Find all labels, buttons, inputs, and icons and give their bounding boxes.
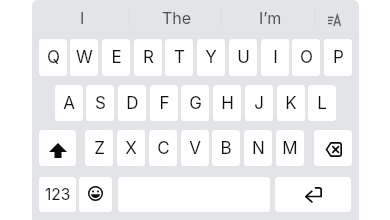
staticText: A [63, 93, 75, 114]
button[interactable]: Text formatting options [315, 0, 359, 32]
button[interactable]: L [308, 85, 336, 121]
button[interactable]: J [245, 85, 273, 121]
staticText: K [285, 93, 297, 114]
button[interactable]: A [55, 85, 83, 121]
button[interactable]: I’m [221, 0, 315, 32]
button[interactable]: N [244, 130, 272, 166]
staticText: W [76, 47, 93, 68]
button[interactable]: R [134, 39, 162, 76]
staticText: Q [47, 47, 60, 68]
staticText: P [333, 47, 344, 68]
staticText: J [254, 93, 264, 114]
staticText: N [252, 138, 265, 159]
staticText: Z [94, 138, 105, 159]
staticText: R [143, 47, 154, 68]
button[interactable]: Emoji keyboard [79, 177, 112, 212]
button[interactable]: P [324, 39, 352, 76]
staticText: U [237, 47, 250, 68]
button[interactable]: Q [39, 39, 67, 76]
button[interactable]: O [292, 39, 320, 76]
button[interactable]: Shift [39, 130, 76, 166]
staticText: V [189, 138, 201, 159]
button[interactable]: I [261, 39, 289, 76]
staticText: I’m [259, 8, 282, 27]
button[interactable]: Z [85, 130, 113, 166]
staticText: D [126, 93, 139, 114]
staticText: H [221, 93, 234, 114]
button[interactable]: 123 [39, 177, 76, 212]
button[interactable]: M [276, 130, 304, 166]
staticText: E [111, 47, 122, 68]
staticText: G [189, 93, 202, 114]
staticText: I [273, 47, 278, 68]
button[interactable]: U [229, 39, 257, 76]
button[interactable]: V [181, 130, 209, 166]
button[interactable]: X [117, 130, 145, 166]
button[interactable]: G [181, 85, 209, 121]
staticText: 123 [45, 185, 71, 204]
button[interactable]: B [212, 130, 240, 166]
staticText: B [220, 138, 232, 159]
staticText: X [125, 138, 137, 159]
staticText: S [95, 93, 106, 114]
button[interactable]: F [150, 85, 178, 121]
button[interactable]: Backspace [314, 130, 352, 166]
staticText: C [157, 138, 170, 159]
button[interactable]: The [129, 0, 221, 32]
button[interactable]: E [102, 39, 130, 76]
staticText: F [159, 93, 170, 114]
staticText: I [80, 8, 85, 27]
staticText: The [162, 8, 192, 27]
button[interactable]: T [165, 39, 193, 76]
staticText: M [282, 138, 298, 159]
button[interactable]: C [149, 130, 177, 166]
staticText: Y [205, 47, 217, 68]
staticText: O [300, 47, 313, 68]
button[interactable]: K [277, 85, 305, 121]
button[interactable]: I [32, 0, 129, 32]
button[interactable]: W [70, 39, 98, 76]
button[interactable]: S [86, 85, 114, 121]
staticText: T [174, 47, 185, 68]
button[interactable]: Return [275, 177, 351, 212]
button[interactable]: D [118, 85, 146, 121]
button[interactable]: H [213, 85, 241, 121]
staticText: L [317, 93, 327, 114]
button[interactable]: Y [197, 39, 225, 76]
